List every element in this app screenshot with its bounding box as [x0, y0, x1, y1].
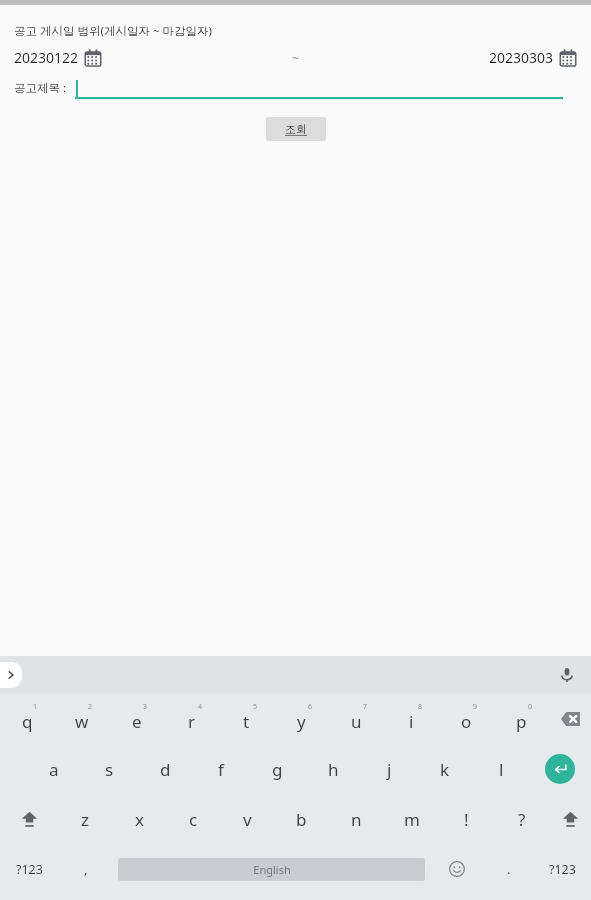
- button[interactable]: Shift: [0, 794, 58, 844]
- button[interactable]: 8: [384, 694, 439, 744]
- staticText: 20230122: [14, 48, 79, 67]
- staticText: g: [272, 758, 283, 781]
- button[interactable]: d: [137, 744, 193, 794]
- staticText: r: [188, 710, 196, 733]
- staticText: i: [409, 710, 414, 733]
- button[interactable]: [75, 77, 563, 99]
- button[interactable]: 20230122: [14, 46, 102, 69]
- staticText: v: [243, 808, 252, 831]
- staticText: 0: [528, 702, 533, 712]
- staticText: ?: [518, 808, 526, 831]
- staticText: z: [81, 808, 89, 831]
- staticText: w: [75, 710, 89, 733]
- staticText: y: [297, 710, 306, 733]
- staticText: t: [243, 710, 250, 733]
- button[interactable]: l: [473, 744, 529, 794]
- staticText: l: [499, 758, 504, 781]
- button[interactable]: h: [305, 744, 361, 794]
- staticText: b: [296, 808, 307, 831]
- button[interactable]: n: [329, 794, 384, 844]
- button[interactable]: 5: [219, 694, 274, 744]
- staticText: English: [253, 862, 291, 877]
- staticText: m: [404, 808, 420, 831]
- staticText: ~: [292, 50, 299, 66]
- staticText: 8: [418, 702, 423, 712]
- button[interactable]: Emoji: [429, 844, 485, 894]
- staticText: f: [218, 758, 224, 781]
- staticText: 공고제목 :: [14, 80, 67, 96]
- button[interactable]: Expand toolbar: [0, 662, 22, 688]
- button[interactable]: English: [118, 858, 425, 881]
- button[interactable]: Comma: [58, 844, 114, 894]
- button[interactable]: c: [166, 794, 220, 844]
- button[interactable]: x: [112, 794, 166, 844]
- staticText: x: [135, 808, 144, 831]
- button[interactable]: Shift: [549, 794, 591, 844]
- staticText: j: [387, 758, 392, 781]
- button[interactable]: 조회: [266, 117, 326, 141]
- staticText: c: [189, 808, 198, 831]
- staticText: !: [464, 808, 469, 831]
- staticText: 공고 게시일 범위(게시일자 ~ 마감일자): [14, 23, 212, 39]
- button[interactable]: 9: [439, 694, 494, 744]
- staticText: 조회: [285, 122, 307, 136]
- button[interactable]: z: [58, 794, 112, 844]
- button[interactable]: 3: [109, 694, 164, 744]
- button[interactable]: a: [26, 744, 81, 794]
- staticText: q: [22, 710, 33, 733]
- staticText: p: [516, 710, 527, 733]
- button[interactable]: ?: [494, 794, 549, 844]
- button[interactable]: j: [361, 744, 417, 794]
- staticText: 5: [253, 702, 258, 712]
- button[interactable]: Enter: [529, 744, 591, 794]
- button[interactable]: s: [81, 744, 137, 794]
- staticText: 3: [143, 702, 148, 712]
- button[interactable]: 2: [54, 694, 109, 744]
- button[interactable]: Voice input: [555, 663, 579, 687]
- staticText: ,: [84, 860, 88, 878]
- staticText: 7: [363, 702, 368, 712]
- button[interactable]: b: [274, 794, 329, 844]
- button[interactable]: 4: [164, 694, 219, 744]
- staticText: ?123: [549, 861, 576, 878]
- staticText: 9: [473, 702, 478, 712]
- staticText: .: [507, 860, 511, 878]
- staticText: e: [132, 710, 142, 733]
- staticText: a: [49, 758, 59, 781]
- staticText: ?123: [16, 861, 43, 878]
- staticText: s: [105, 758, 114, 781]
- staticText: k: [440, 758, 450, 781]
- staticText: 20230303: [489, 48, 554, 67]
- button[interactable]: !: [439, 794, 494, 844]
- button[interactable]: f: [193, 744, 249, 794]
- staticText: u: [351, 710, 362, 733]
- button[interactable]: k: [417, 744, 473, 794]
- staticText: 6: [308, 702, 313, 712]
- staticText: 4: [198, 702, 203, 712]
- button[interactable]: 1: [0, 694, 54, 744]
- button[interactable]: 7: [329, 694, 384, 744]
- staticText: d: [160, 758, 171, 781]
- button[interactable]: 0: [494, 694, 549, 744]
- staticText: o: [461, 710, 472, 733]
- button[interactable]: ?123: [533, 844, 591, 894]
- button[interactable]: ?123: [0, 844, 58, 894]
- staticText: h: [328, 758, 339, 781]
- staticText: 2: [88, 702, 93, 712]
- button[interactable]: 6: [274, 694, 329, 744]
- staticText: n: [351, 808, 362, 831]
- button[interactable]: Period: [485, 844, 533, 894]
- button[interactable]: Backspace: [549, 694, 591, 744]
- staticText: 1: [33, 702, 38, 712]
- button[interactable]: 20230303: [489, 46, 577, 69]
- button[interactable]: m: [384, 794, 439, 844]
- button[interactable]: g: [249, 744, 305, 794]
- button[interactable]: v: [220, 794, 274, 844]
